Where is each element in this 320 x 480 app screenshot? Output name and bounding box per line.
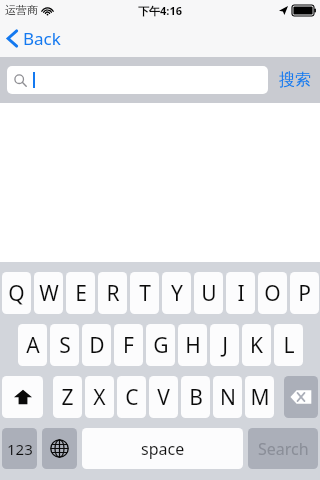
- button[interactable]: M: [245, 376, 274, 418]
- staticText: U: [201, 279, 217, 308]
- staticText: E: [75, 279, 87, 308]
- button[interactable]: 123: [2, 428, 37, 469]
- button[interactable]: A: [18, 324, 47, 366]
- staticText: X: [93, 383, 106, 412]
- staticText: space: [141, 438, 185, 460]
- button[interactable]: G: [146, 324, 175, 366]
- button[interactable]: 搜索: [277, 64, 313, 96]
- button[interactable]: Delete: [284, 376, 318, 418]
- button[interactable]: H: [178, 324, 207, 366]
- button[interactable]: W: [34, 272, 63, 314]
- button[interactable]: F: [114, 324, 143, 366]
- staticText: C: [125, 383, 139, 412]
- button[interactable]: Search: [248, 428, 318, 469]
- staticText: K: [250, 331, 263, 360]
- staticText: M: [250, 383, 270, 412]
- staticText: R: [106, 279, 120, 308]
- staticText: N: [220, 383, 236, 412]
- button[interactable]: O: [258, 272, 287, 314]
- staticText: L: [283, 331, 295, 360]
- button[interactable]: K: [242, 324, 271, 366]
- staticText: Z: [61, 383, 74, 412]
- staticText: 下午4:16: [138, 3, 182, 18]
- button[interactable]: E: [66, 272, 95, 314]
- button[interactable]: D: [82, 324, 111, 366]
- button[interactable]: P: [290, 272, 319, 314]
- button[interactable]: Z: [53, 376, 82, 418]
- staticText: F: [123, 331, 134, 360]
- staticText: S: [59, 331, 71, 360]
- button[interactable]: L: [274, 324, 303, 366]
- button[interactable]: [7, 66, 268, 94]
- staticText: J: [222, 331, 228, 360]
- button[interactable]: Back: [0, 23, 71, 54]
- staticText: 123: [7, 439, 33, 459]
- staticText: O: [264, 279, 281, 308]
- staticText: 运营商: [5, 3, 38, 17]
- staticText: Search: [258, 438, 309, 460]
- button[interactable]: space: [82, 428, 243, 469]
- button[interactable]: R: [98, 272, 127, 314]
- staticText: Y: [171, 279, 183, 308]
- staticText: I: [237, 279, 245, 308]
- staticText: B: [189, 383, 203, 412]
- button[interactable]: J: [210, 324, 239, 366]
- button[interactable]: I: [226, 272, 255, 314]
- staticText: A: [26, 331, 40, 360]
- button[interactable]: C: [117, 376, 146, 418]
- staticText: Q: [8, 279, 25, 308]
- staticText: 搜索: [279, 70, 311, 90]
- button[interactable]: V: [149, 376, 178, 418]
- button[interactable]: Change keyboard: [42, 428, 77, 469]
- staticText: G: [153, 331, 169, 360]
- staticText: T: [139, 279, 151, 308]
- staticText: P: [298, 279, 311, 308]
- staticText: H: [185, 331, 201, 360]
- button[interactable]: Y: [162, 272, 191, 314]
- button[interactable]: X: [85, 376, 114, 418]
- button[interactable]: T: [130, 272, 159, 314]
- staticText: V: [157, 383, 170, 412]
- button[interactable]: Shift: [2, 376, 43, 418]
- button[interactable]: S: [50, 324, 79, 366]
- staticText: Back: [23, 27, 61, 50]
- button[interactable]: B: [181, 376, 210, 418]
- button[interactable]: N: [213, 376, 242, 418]
- staticText: W: [39, 279, 59, 308]
- staticText: D: [89, 331, 105, 360]
- button[interactable]: U: [194, 272, 223, 314]
- button[interactable]: Q: [2, 272, 31, 314]
